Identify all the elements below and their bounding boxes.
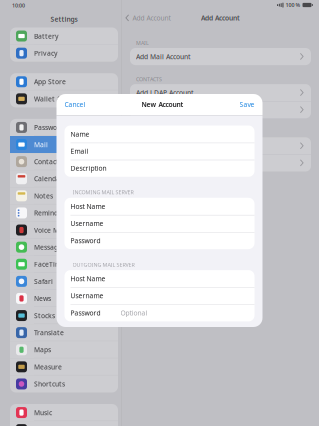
button[interactable]: Contacts bbox=[10, 153, 118, 170]
staticText: Add Account bbox=[132, 14, 170, 22]
staticText: Save bbox=[239, 100, 254, 109]
staticText: CONTACTS bbox=[136, 76, 162, 83]
staticText: Notes bbox=[34, 191, 53, 200]
button[interactable]: Add Account bbox=[121, 11, 211, 25]
staticText: Password bbox=[70, 308, 100, 317]
staticText: Privacy bbox=[34, 49, 58, 58]
staticText: Username bbox=[70, 291, 103, 300]
staticText: Description bbox=[70, 164, 106, 173]
staticText: Name bbox=[70, 130, 89, 138]
staticText: Passwords bbox=[34, 123, 67, 132]
staticText: New Account bbox=[141, 100, 183, 109]
button[interactable]: Shortcuts bbox=[10, 375, 118, 392]
staticText: Optional bbox=[120, 308, 147, 317]
button[interactable]: Mail bbox=[10, 136, 118, 153]
button[interactable]: TV bbox=[10, 421, 118, 426]
staticText: Add CardDAV Account bbox=[136, 105, 205, 114]
staticText: Wallet & bbox=[34, 94, 62, 103]
button[interactable]: Passwords bbox=[10, 119, 118, 136]
staticText: Calendar bbox=[34, 174, 63, 183]
staticText: Reminders bbox=[34, 208, 68, 217]
staticText: Host Name bbox=[70, 274, 105, 283]
staticText: OUTGOING MAIL SERVER bbox=[72, 261, 134, 268]
staticText: Add LDAP Account bbox=[136, 88, 194, 97]
staticText: Messages bbox=[34, 243, 65, 252]
staticText: Add Account bbox=[201, 14, 240, 22]
staticText: 10:00 bbox=[12, 2, 25, 9]
staticText: FaceTime bbox=[34, 260, 65, 269]
staticText: 100 % bbox=[285, 1, 300, 9]
staticText: Safari bbox=[34, 277, 53, 286]
staticText: Add Mail Account bbox=[136, 52, 191, 61]
button[interactable]: Voice Memos bbox=[10, 221, 118, 239]
button[interactable]: News bbox=[10, 290, 118, 307]
staticText: Host Name bbox=[70, 202, 105, 211]
button[interactable]: Add LDAP Account bbox=[130, 84, 311, 101]
button[interactable]: Messages bbox=[10, 239, 118, 256]
staticText: Settings bbox=[50, 15, 77, 24]
button[interactable]: Add CardDAV Account bbox=[130, 101, 311, 118]
button[interactable]: Add Mail Account bbox=[130, 48, 311, 65]
staticText: Music bbox=[34, 408, 52, 417]
button[interactable]: Save bbox=[239, 94, 262, 115]
button[interactable]: Maps bbox=[10, 341, 118, 358]
staticText: Username bbox=[70, 219, 103, 228]
staticText: Battery bbox=[34, 32, 59, 40]
button[interactable]: Add Subscribed Calendar bbox=[130, 154, 311, 171]
button[interactable]: Calendar bbox=[10, 170, 118, 187]
button[interactable]: Stocks bbox=[10, 307, 118, 324]
button[interactable]: App Store bbox=[10, 73, 118, 90]
button[interactable]: Translate bbox=[10, 324, 118, 341]
button[interactable]: Add CalDAV Account bbox=[130, 137, 311, 154]
button[interactable]: Cancel bbox=[56, 94, 85, 115]
staticText: Email bbox=[70, 147, 88, 156]
button[interactable]: Battery bbox=[10, 27, 118, 45]
staticText: Maps bbox=[34, 345, 51, 354]
staticText: App Store bbox=[34, 77, 66, 86]
button[interactable]: FaceTime bbox=[10, 256, 118, 273]
staticText: Add Subscribed Calendar bbox=[136, 158, 216, 167]
staticText: Shortcuts bbox=[34, 379, 65, 388]
staticText: Contacts bbox=[34, 157, 62, 166]
button[interactable]: Notes bbox=[10, 187, 118, 204]
button[interactable]: Privacy bbox=[10, 45, 118, 62]
button[interactable]: Music bbox=[10, 404, 118, 421]
staticText: Password bbox=[70, 236, 100, 245]
staticText: Translate bbox=[34, 328, 64, 337]
staticText: News bbox=[34, 294, 51, 303]
button[interactable]: Measure bbox=[10, 358, 118, 375]
staticText: Measure bbox=[34, 362, 62, 371]
staticText: Mail bbox=[34, 140, 48, 149]
staticText: MAIL bbox=[136, 39, 149, 47]
staticText: Add CalDAV Account bbox=[136, 141, 200, 150]
button[interactable]: Wallet & bbox=[10, 90, 118, 107]
staticText: INCOMING MAIL SERVER bbox=[72, 189, 133, 196]
button[interactable]: Reminders bbox=[10, 204, 118, 221]
button[interactable]: Safari bbox=[10, 273, 118, 290]
staticText: Stocks bbox=[34, 311, 55, 320]
staticText: Voice Memos bbox=[34, 226, 76, 234]
staticText: Cancel bbox=[64, 100, 85, 109]
